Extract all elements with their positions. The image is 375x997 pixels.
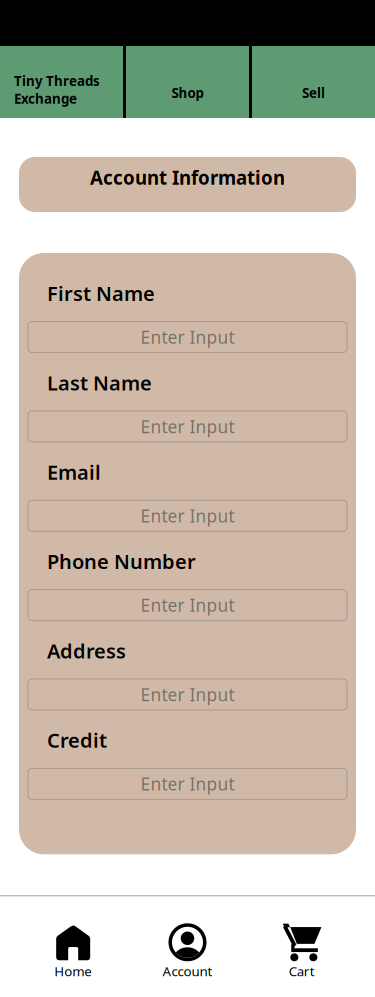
button[interactable]: Enter Input — [28, 679, 347, 710]
button[interactable]: Enter Input — [28, 500, 347, 531]
staticText: Home — [54, 962, 92, 980]
staticText: Phone Number — [47, 548, 196, 575]
staticText: Email — [47, 459, 101, 485]
button[interactable]: Sell — [252, 46, 375, 118]
button[interactable]: Home — [16, 921, 130, 980]
staticText: Tiny Threads Exchange — [14, 72, 100, 107]
button[interactable]: Enter Input — [28, 411, 347, 442]
button[interactable]: Cart — [245, 921, 359, 980]
staticText: Enter Input — [140, 326, 234, 349]
staticText: Sell — [302, 84, 325, 102]
button[interactable]: Account Information — [0, 157, 375, 212]
staticText: Enter Input — [140, 683, 234, 706]
staticText: First Name — [47, 280, 155, 307]
button[interactable]: Account — [130, 921, 245, 980]
staticText: Enter Input — [140, 504, 234, 527]
button[interactable]: Enter Input — [28, 768, 347, 799]
staticText: Account — [162, 962, 212, 980]
staticText: Credit — [47, 727, 107, 753]
button[interactable]: Enter Input — [28, 322, 347, 353]
staticText: Address — [47, 637, 126, 664]
staticText: Enter Input — [140, 594, 234, 617]
staticText: Enter Input — [140, 772, 234, 795]
staticText: Last Name — [47, 369, 152, 396]
button[interactable]: Enter Input — [28, 590, 347, 621]
staticText: Shop — [171, 84, 203, 102]
staticText: Account Information — [90, 165, 285, 190]
staticText: Cart — [289, 962, 315, 980]
staticText: Enter Input — [140, 415, 234, 438]
button[interactable]: Shop — [126, 46, 249, 118]
button[interactable]: Tiny Threads Exchange — [0, 46, 123, 118]
